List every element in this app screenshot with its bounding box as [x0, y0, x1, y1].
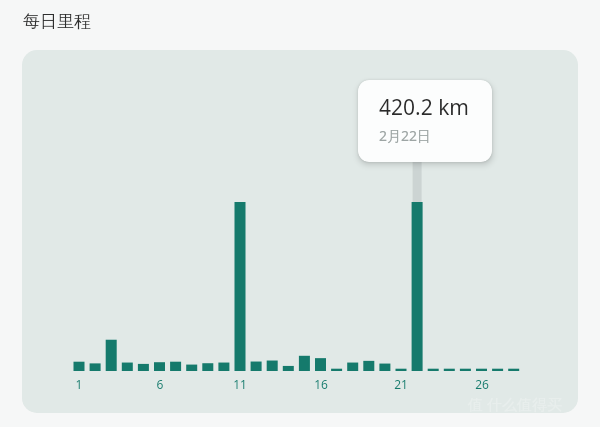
- button[interactable]: 每日里程: [21, 8, 93, 35]
- staticText: 2月22日: [379, 126, 432, 145]
- staticText: 26: [466, 376, 498, 393]
- staticText: 1: [63, 376, 95, 393]
- staticText: 6: [144, 376, 176, 393]
- button[interactable]: 1: [22, 50, 578, 413]
- staticText: 值 什么值得买: [468, 394, 562, 414]
- staticText: 11: [224, 376, 256, 393]
- button[interactable]: 420.2 km on 2月22日: [358, 80, 492, 162]
- staticText: 16: [305, 376, 337, 393]
- staticText: 21: [385, 376, 417, 393]
- staticText: 420.2 km: [379, 93, 469, 122]
- staticText: 每日里程: [23, 11, 91, 32]
